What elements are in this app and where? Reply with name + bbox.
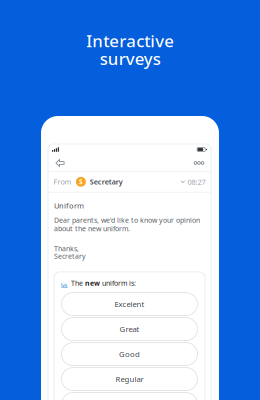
staticText: Regular xyxy=(115,374,143,384)
staticText: S xyxy=(79,177,83,186)
staticText: Great xyxy=(119,324,139,334)
staticText: Excelent xyxy=(114,299,144,309)
button[interactable]: Back xyxy=(51,155,68,171)
staticText: Thanks, Secretary xyxy=(54,245,86,260)
staticText: Uniform xyxy=(54,201,84,211)
button[interactable]: From xyxy=(48,172,211,192)
staticText: From xyxy=(53,177,71,187)
button[interactable]: Great xyxy=(61,318,197,341)
staticText: 08:27 xyxy=(187,177,205,187)
button[interactable]: More options xyxy=(190,155,207,171)
staticText: Secretary xyxy=(90,177,123,187)
button[interactable]: Excelent xyxy=(61,293,197,316)
staticText: Dear parents, we'd like to know your opi… xyxy=(54,216,200,233)
button[interactable]: Regular xyxy=(61,368,197,391)
button[interactable]: Good xyxy=(61,343,197,366)
button[interactable]: Bad xyxy=(61,393,197,400)
staticText: Good xyxy=(119,349,140,359)
staticText: The new uniform is: xyxy=(71,278,136,288)
staticText: Interactive surveys xyxy=(86,32,174,67)
